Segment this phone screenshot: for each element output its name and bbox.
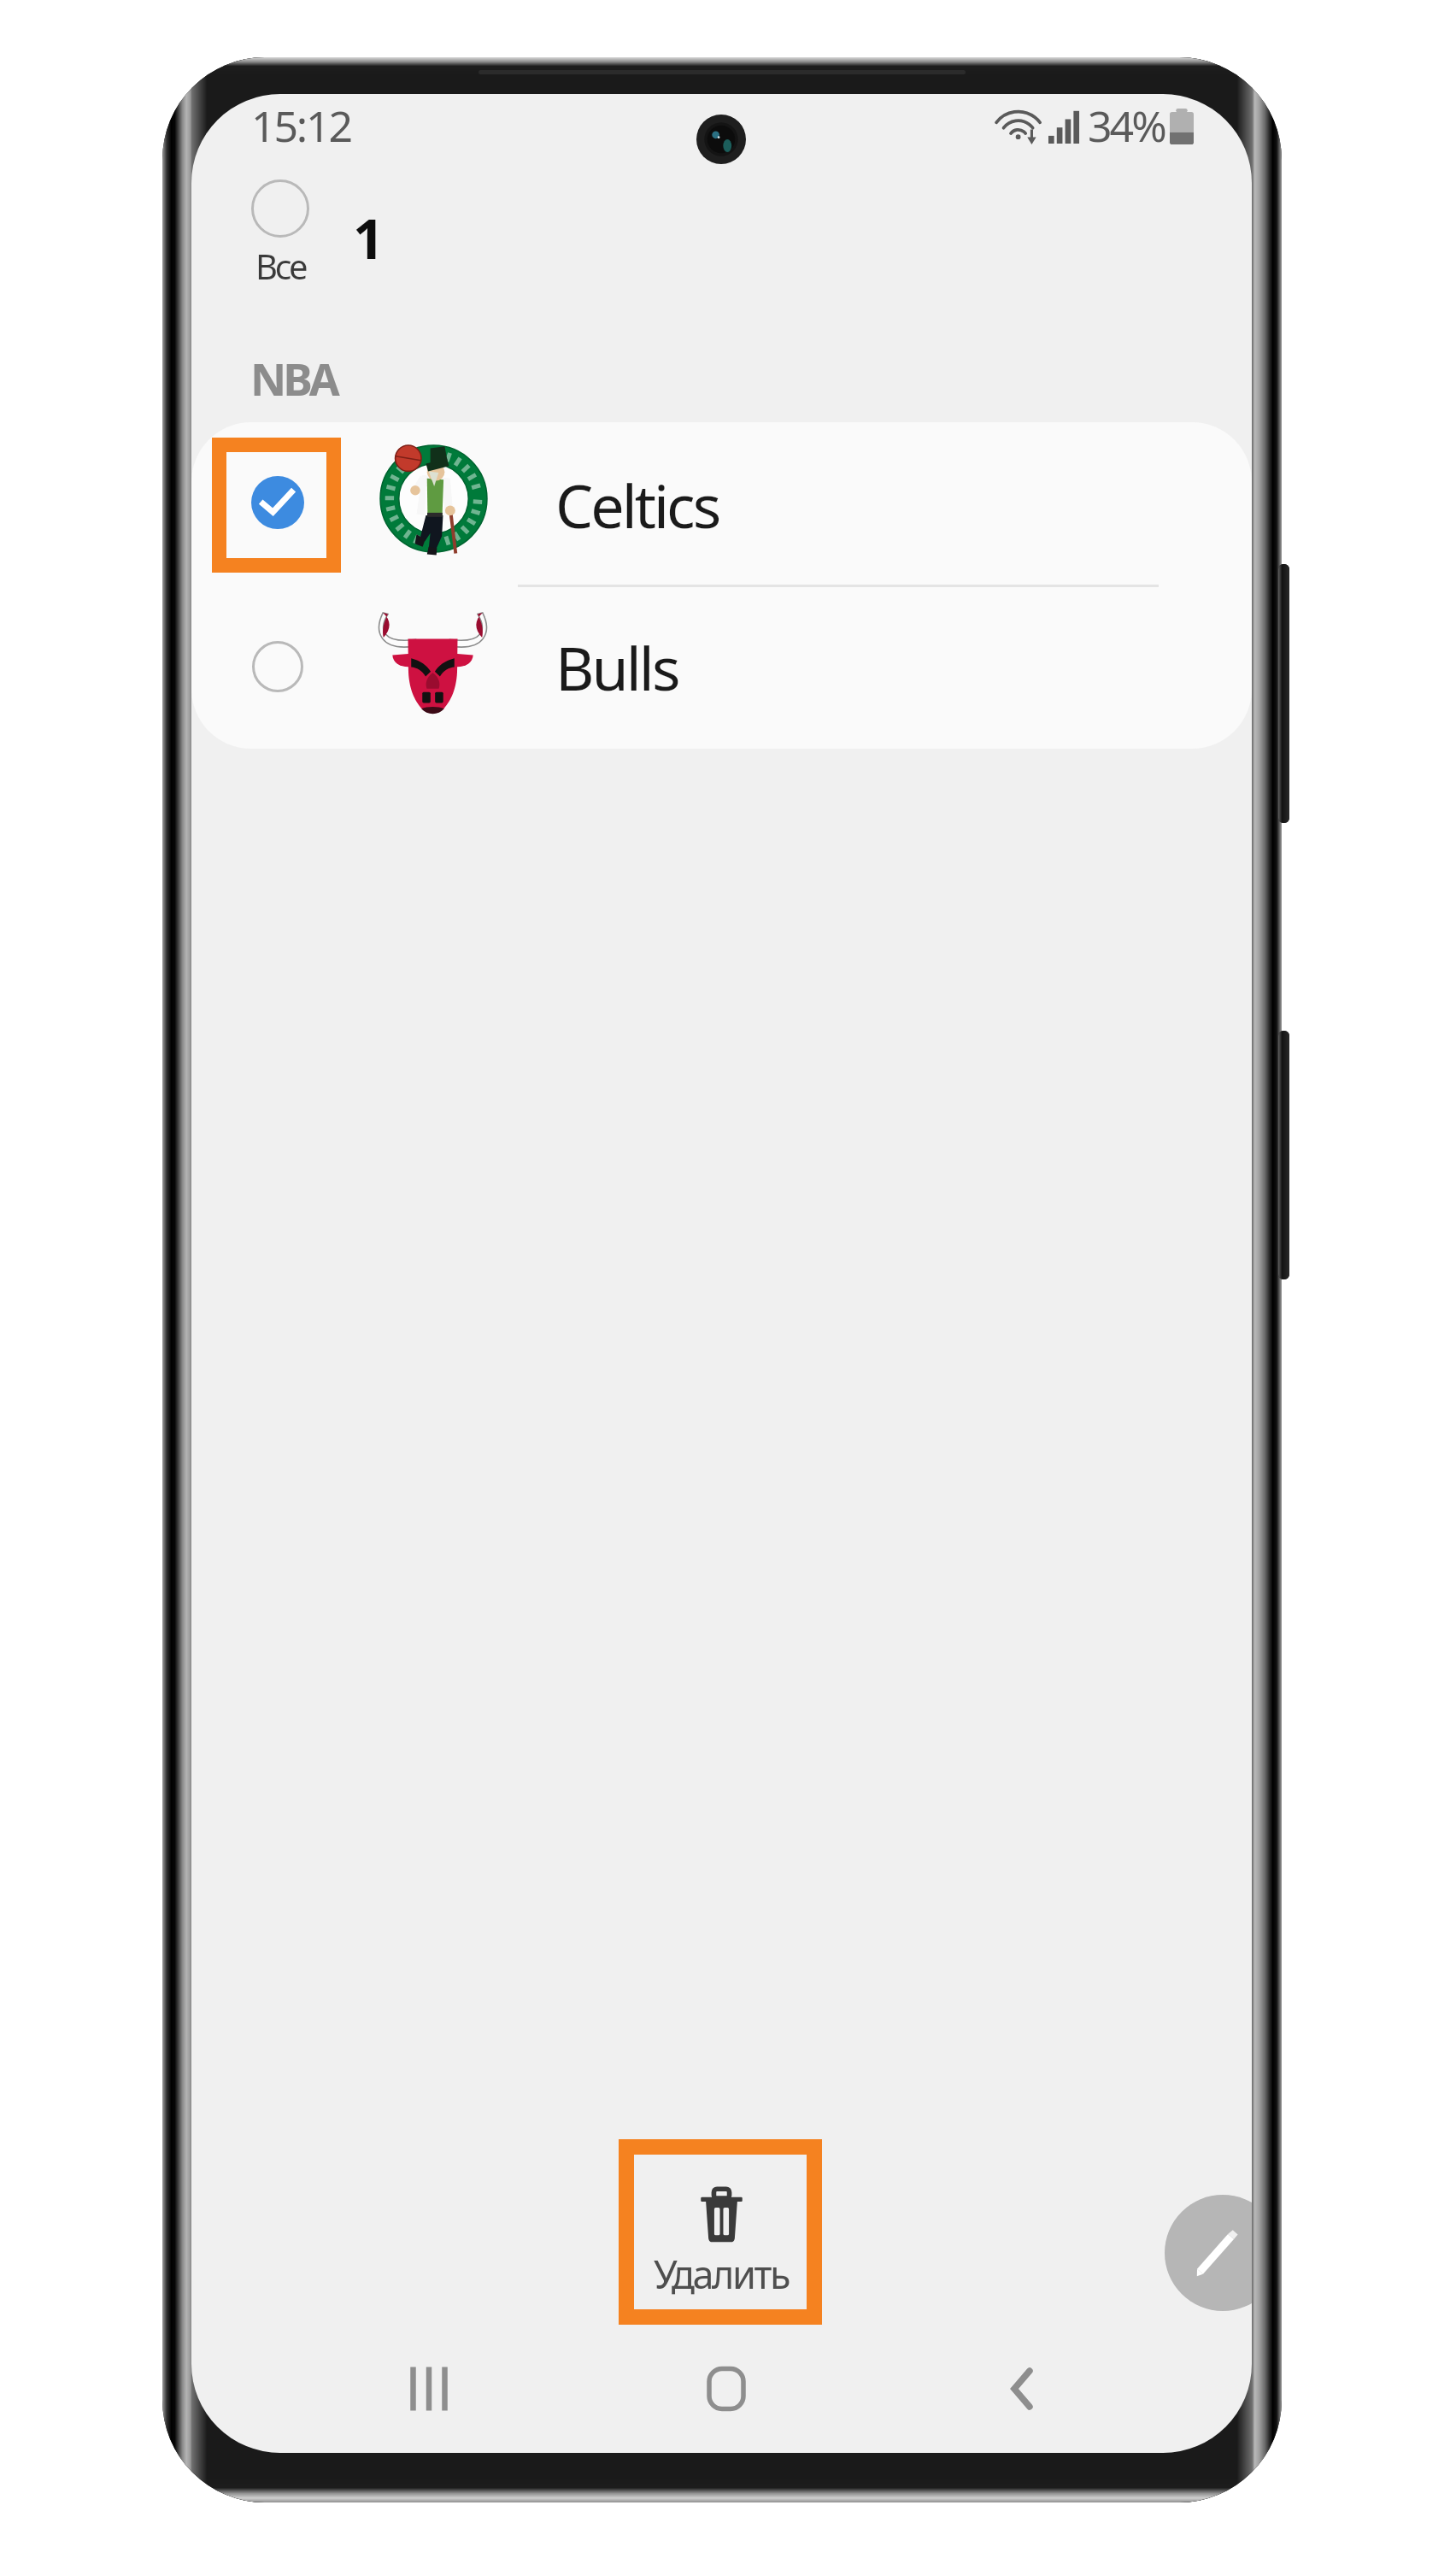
button[interactable]: Recents [343, 2335, 514, 2443]
button[interactable]: Edit [1165, 2195, 1252, 2311]
button[interactable]: Bulls [191, 586, 1252, 749]
button[interactable]: Удалить [619, 2139, 822, 2325]
button[interactable]: Back [936, 2335, 1107, 2443]
staticText: Удалить [654, 2248, 789, 2300]
staticText: Celtics [555, 464, 719, 545]
staticText: Все [255, 243, 306, 289]
staticText: NBA [250, 348, 337, 409]
button[interactable]: Celtics [191, 422, 1252, 586]
staticText: 1 [353, 201, 385, 275]
staticText: Bulls [555, 626, 678, 708]
staticText: 34% [1088, 97, 1165, 155]
staticText: 15:12 [251, 97, 351, 155]
button[interactable]: Все [244, 176, 316, 292]
button[interactable]: Home [641, 2335, 812, 2443]
